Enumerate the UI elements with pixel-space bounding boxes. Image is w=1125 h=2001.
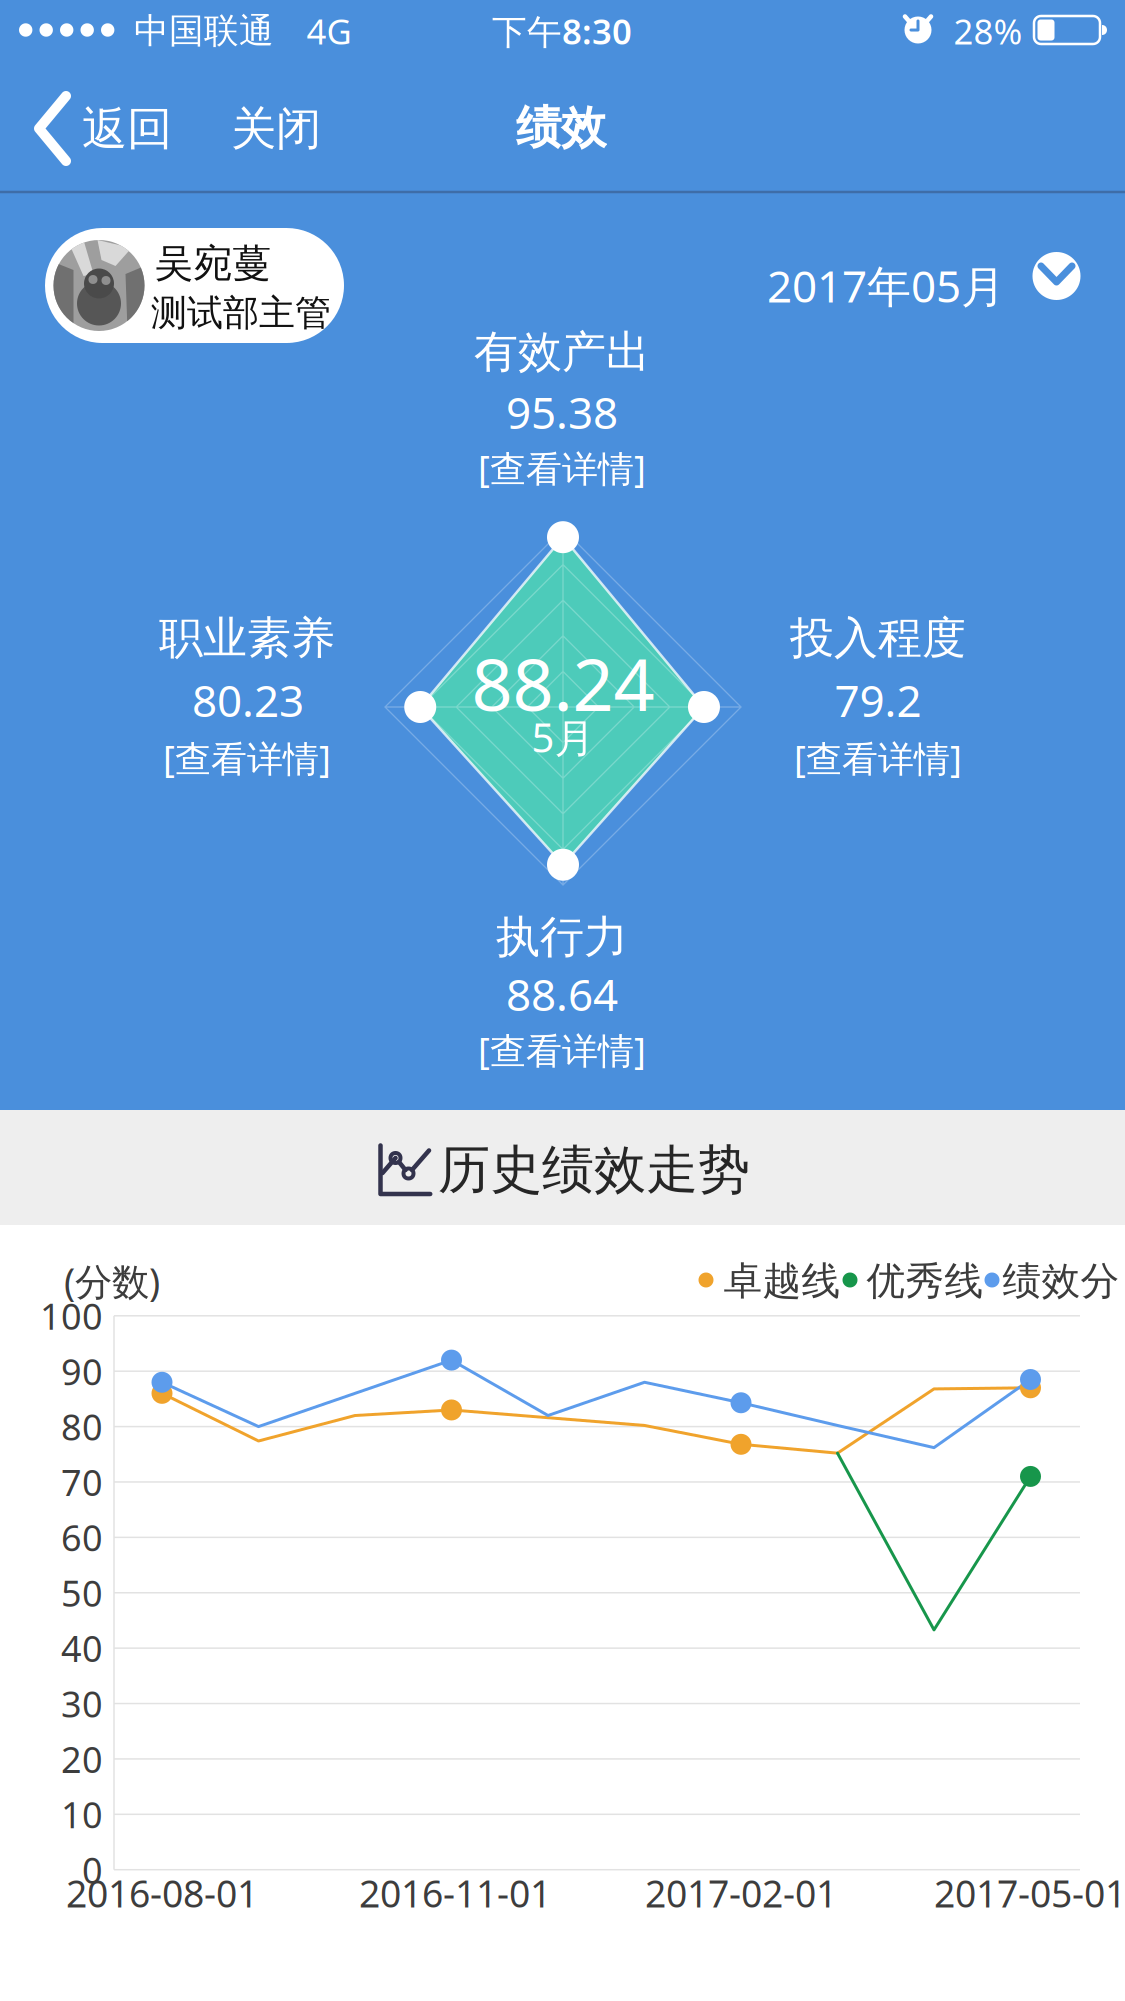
staticText: 40 <box>61 1624 103 1672</box>
button[interactable]: [查看详情] <box>432 1022 692 1078</box>
staticText: 2016-11-01 <box>359 1868 551 1918</box>
button[interactable]: [查看详情] <box>117 730 377 786</box>
staticText: [查看详情] <box>794 734 962 782</box>
staticText: 优秀线 <box>866 1257 983 1305</box>
staticText: 绩效分 <box>1002 1257 1119 1305</box>
staticText: 88.64 <box>506 965 618 1023</box>
staticText: 80.23 <box>192 671 304 729</box>
staticText: 20 <box>61 1735 103 1783</box>
staticText: (分数) <box>64 1256 160 1306</box>
staticText: 95.38 <box>506 383 618 441</box>
staticText: 绩效 <box>516 100 606 156</box>
staticText: 88.24 <box>471 635 654 731</box>
staticText: 50 <box>61 1569 103 1617</box>
staticText: 2017年05月 <box>767 256 1005 315</box>
staticText: 2017-02-01 <box>645 1868 837 1918</box>
button[interactable]: [查看详情] <box>432 440 692 496</box>
staticText: 2017-05-01 <box>934 1868 1125 1918</box>
staticText: 90 <box>61 1347 103 1395</box>
staticText: 70 <box>61 1458 103 1506</box>
staticText: 投入程度 <box>790 611 966 665</box>
staticText: 测试部主管 <box>151 291 331 335</box>
button[interactable]: 关闭 <box>211 79 341 179</box>
staticText: 历史绩效走势 <box>438 1138 750 1202</box>
staticText: 中国联通 <box>134 10 274 52</box>
staticText: 80 <box>61 1403 103 1450</box>
staticText: 28% <box>953 8 1022 54</box>
staticText: 下午8:30 <box>492 8 632 54</box>
staticText: 吴宛蔓 <box>154 240 271 287</box>
staticText: 返回 <box>82 101 172 157</box>
staticText: 卓越线 <box>723 1257 840 1305</box>
staticText: 60 <box>61 1513 103 1561</box>
staticText: 0 <box>82 1846 103 1894</box>
button[interactable]: 吴宛蔓 <box>45 228 344 343</box>
staticText: 5月 <box>531 710 594 763</box>
staticText: 79.2 <box>834 671 921 729</box>
staticText: 2016-08-01 <box>66 1868 258 1918</box>
button[interactable]: 返回 <box>18 72 212 186</box>
staticText: [查看详情] <box>478 444 646 492</box>
staticText: 10 <box>61 1790 103 1838</box>
staticText: [查看详情] <box>163 734 331 782</box>
staticText: 4G <box>306 8 351 54</box>
staticText: 30 <box>61 1680 103 1727</box>
staticText: 有效产出 <box>474 325 650 379</box>
button[interactable]: 选择月份 <box>777 248 1081 323</box>
staticText: 100 <box>40 1292 103 1340</box>
staticText: 执行力 <box>496 910 628 964</box>
staticText: 职业素养 <box>159 611 335 665</box>
staticText: [查看详情] <box>478 1026 646 1074</box>
staticText: 关闭 <box>231 101 321 157</box>
button[interactable]: [查看详情] <box>748 730 1008 786</box>
